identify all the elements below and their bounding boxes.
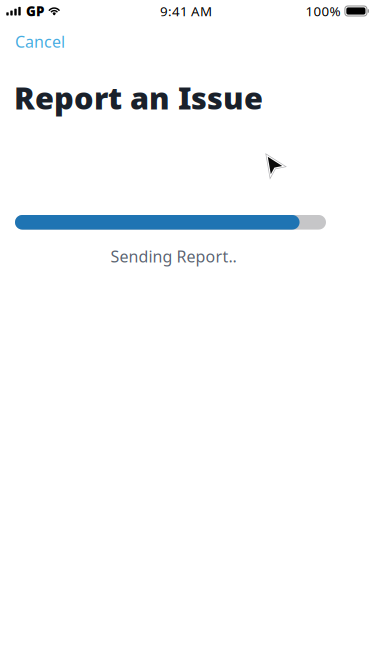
button[interactable]: Cancel bbox=[0, 23, 80, 60]
staticText: Cancel bbox=[15, 31, 65, 52]
staticText: Sending Report.. bbox=[110, 246, 236, 267]
staticText: Report an Issue bbox=[14, 77, 263, 118]
staticText: 9:41 AM bbox=[160, 2, 212, 20]
staticText: 100% bbox=[305, 2, 340, 20]
staticText: GP bbox=[26, 2, 44, 20]
